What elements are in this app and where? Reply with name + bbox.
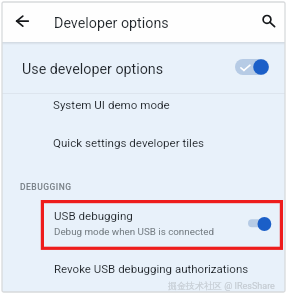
button[interactable]: USB debugging toggle (244, 213, 272, 235)
staticText: DEBUGGING (20, 182, 72, 192)
staticText: USB debugging (54, 209, 133, 223)
button[interactable] (2, 124, 285, 160)
button[interactable] (2, 254, 285, 286)
staticText: Developer options (54, 15, 169, 32)
staticText: Revoke USB debugging authorizations (54, 262, 249, 275)
button[interactable] (2, 86, 285, 122)
staticText: 掘金技术社区 @ IResShare (168, 280, 275, 291)
staticText: Quick settings developer tiles (53, 136, 205, 150)
staticText: System UI demo mode (53, 98, 170, 112)
button[interactable]: Use developer options toggle (235, 59, 269, 75)
button[interactable] (40, 200, 285, 250)
button[interactable]: Search (254, 7, 280, 33)
button[interactable]: Back (8, 9, 34, 35)
staticText: Debug mode when USB is connected (54, 226, 214, 237)
button[interactable] (2, 47, 285, 80)
staticText: Use developer options (22, 61, 164, 78)
